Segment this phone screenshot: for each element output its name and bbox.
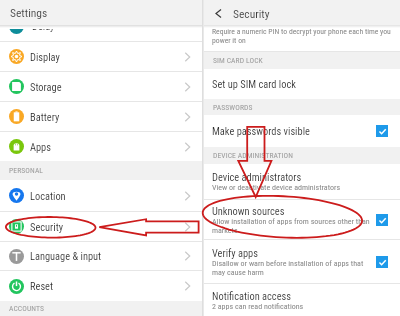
staticText: SIM CARD LOCK — [213, 56, 263, 65]
button[interactable]: Toggle setting — [376, 125, 388, 137]
staticText: DEVICE ADMINISTRATION — [213, 151, 294, 160]
button[interactable]: Security — [0, 212, 202, 241]
staticText: Encrypt phone — [212, 12, 271, 24]
staticText: Display — [30, 51, 184, 63]
button[interactable]: Apps — [0, 132, 202, 161]
staticText: Set up SIM card lock — [212, 78, 296, 90]
staticText: Storage — [30, 81, 184, 93]
button[interactable]: Back — [211, 6, 225, 20]
button[interactable]: Verify apps — [204, 240, 400, 283]
staticText: Security — [233, 7, 270, 20]
button[interactable]: Battery — [0, 102, 202, 131]
staticText: Language & input — [30, 250, 184, 262]
button[interactable]: Location — [0, 180, 202, 211]
staticText: Reset — [30, 280, 184, 292]
staticText: Notification access — [212, 290, 292, 302]
staticText: Settings — [10, 6, 48, 19]
button[interactable]: Toggle setting — [376, 256, 388, 268]
button[interactable]: Notification access — [204, 284, 400, 316]
staticText: 2 apps can read notifications — [212, 302, 304, 311]
staticText: ACCOUNTS — [9, 304, 45, 313]
staticText: Make passwords visible — [212, 125, 310, 137]
staticText: Unknown sources — [212, 205, 285, 217]
staticText: Device administrators — [212, 171, 302, 183]
staticText: Disallow or warn before installation of … — [212, 259, 364, 277]
staticText: Location — [30, 190, 184, 202]
staticText: View or deactivate device administrators — [212, 183, 341, 192]
button[interactable]: Reset — [0, 271, 202, 301]
button[interactable]: Unknown sources — [204, 200, 400, 239]
staticText: PASSWORDS — [213, 103, 253, 112]
button[interactable]: Toggle setting — [376, 214, 388, 226]
button[interactable]: Make passwords visible — [204, 115, 400, 147]
button[interactable]: Language & input — [0, 242, 202, 270]
staticText: PERSONAL — [9, 166, 44, 175]
staticText: Delay — [32, 20, 55, 32]
button[interactable]: Set up SIM card lock — [204, 69, 400, 99]
button[interactable]: Device administrators — [204, 164, 400, 199]
staticText: Security — [30, 221, 184, 233]
button[interactable]: Display — [0, 42, 202, 71]
staticText: Apps — [30, 141, 184, 153]
staticText: Allow installation of apps from sources … — [212, 217, 370, 235]
staticText: Verify apps — [212, 247, 258, 259]
staticText: Battery — [30, 111, 184, 123]
button[interactable]: Storage — [0, 72, 202, 101]
staticText: Require a numeric PIN to decrypt your ph… — [212, 27, 394, 45]
